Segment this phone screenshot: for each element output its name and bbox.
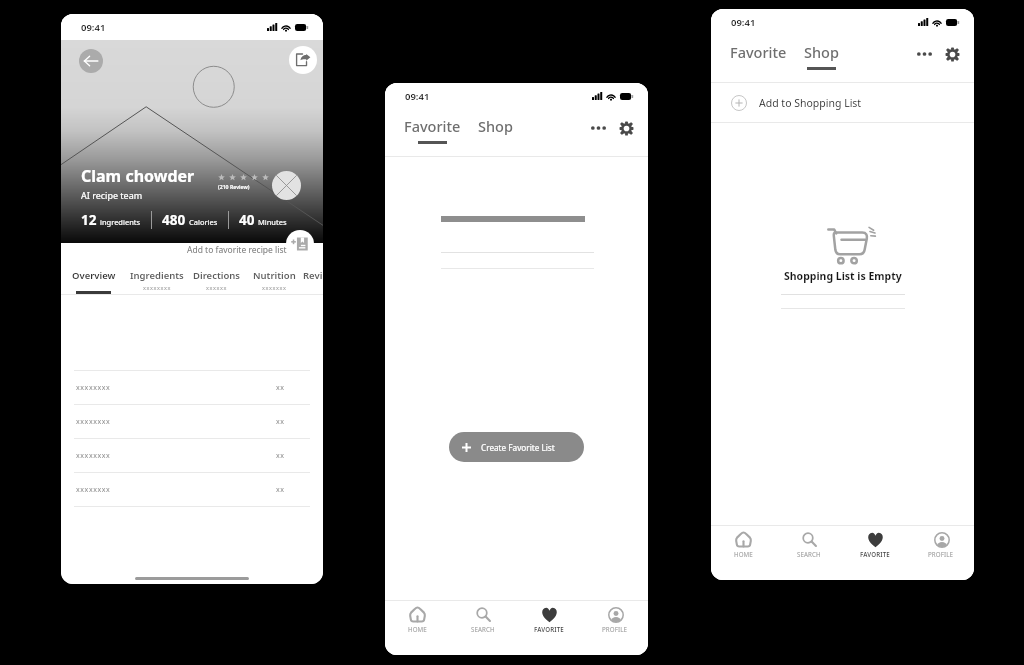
staticText: xx [276,417,285,427]
button[interactable]: More options [587,119,609,137]
button[interactable]: Favorite [730,42,787,70]
button[interactable]: Ingredients [126,257,188,294]
button[interactable]: Settings [616,118,636,138]
staticText: Shop [478,116,513,136]
staticText: xxxxxxxx [76,383,111,393]
button[interactable]: xxxxxxxx [74,371,310,404]
button[interactable]: More options [913,45,935,63]
button[interactable]: Directions [188,257,246,294]
button[interactable]: Nutrition [246,257,302,294]
staticText: HOME [734,550,753,558]
staticText: Revi [303,269,323,282]
button[interactable]: xxxxxxxx [74,405,310,438]
staticText: AI recipe team [81,189,143,201]
staticText: Nutrition [253,269,296,282]
staticText: Clam chowder [81,165,195,187]
staticText: Ingredients [130,269,184,282]
button[interactable]: Back [79,49,103,73]
staticText: SEARCH [797,550,821,558]
button[interactable]: Share [289,46,317,74]
staticText: (210 Review) [218,183,250,190]
staticText: xxxxxxxx [76,485,111,495]
staticText: Calories [189,217,218,227]
button[interactable]: Shop [478,116,513,144]
staticText: xxxxxxxx [76,417,111,427]
staticText: Overview [72,269,116,282]
button[interactable]: SEARCH [776,526,842,560]
staticText: Minutes [258,217,287,227]
button[interactable]: Create Favorite List [449,432,584,462]
staticText: FAVORITE [860,550,890,558]
staticText: FAVORITE [534,625,564,633]
staticText: xx [276,383,285,393]
button[interactable]: Overview [61,257,126,294]
staticText: Shopping List is Empty [784,269,902,283]
button[interactable]: Settings [942,44,962,64]
staticText: 12 [81,211,97,229]
button[interactable]: Revi [302,257,323,294]
button[interactable]: HOME [711,526,776,560]
button[interactable]: xxxxxxxx [74,473,310,506]
staticText: Add to Shopping List [759,96,862,110]
staticText: xx [276,451,285,461]
staticText: 40 [239,211,255,229]
staticText: Directions [193,269,241,282]
staticText: Create Favorite List [481,442,555,453]
staticText: xxxxxxxx [76,451,111,461]
staticText: PROFILE [928,550,954,558]
staticText: 09:41 [81,21,106,34]
button[interactable]: PROFILE [908,526,974,560]
staticText: Favorite [730,42,787,62]
button[interactable]: PROFILE [582,601,648,635]
staticText: xxxxxx [206,284,228,291]
button[interactable]: xxxxxxxx [74,439,310,472]
button[interactable]: SEARCH [450,601,516,635]
staticText: xxxxxxx [262,284,287,291]
button[interactable]: Favorite [404,116,461,144]
button[interactable]: Shop [804,42,839,70]
staticText: SEARCH [471,625,495,633]
button[interactable]: FAVORITE [842,526,908,560]
button[interactable]: Add to favorite recipe list [286,230,314,258]
button[interactable]: Add to Shopping List [711,83,974,122]
staticText: xx [276,485,285,495]
staticText: 09:41 [405,90,430,103]
staticText: ingredients [100,217,141,227]
staticText: 09:41 [731,16,756,29]
button[interactable]: HOME [385,601,450,635]
staticText: 480 [162,211,186,229]
button[interactable]: FAVORITE [516,601,582,635]
staticText: Shop [804,42,839,62]
staticText: Add to favorite recipe list [187,244,287,256]
staticText: PROFILE [602,625,628,633]
staticText: xxxxxxxx [143,284,172,291]
staticText: HOME [408,625,427,633]
staticText: Favorite [404,116,461,136]
